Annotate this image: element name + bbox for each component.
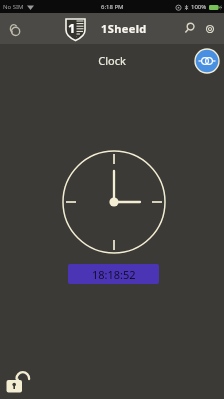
button[interactable] xyxy=(180,19,199,38)
button[interactable] xyxy=(2,366,34,396)
button[interactable] xyxy=(201,20,218,37)
staticText: 18:18:52 xyxy=(92,267,136,282)
button[interactable] xyxy=(194,48,220,74)
staticText: No SIM xyxy=(3,3,24,11)
staticText: 1 xyxy=(68,19,76,37)
staticText: 1Sheeld xyxy=(101,21,147,36)
button[interactable]: 18:18:52 xyxy=(68,264,159,284)
button[interactable] xyxy=(7,22,23,38)
staticText: Clock xyxy=(0,53,224,68)
staticText: 100% xyxy=(191,3,207,11)
staticText: 6:18 PM xyxy=(101,3,124,11)
